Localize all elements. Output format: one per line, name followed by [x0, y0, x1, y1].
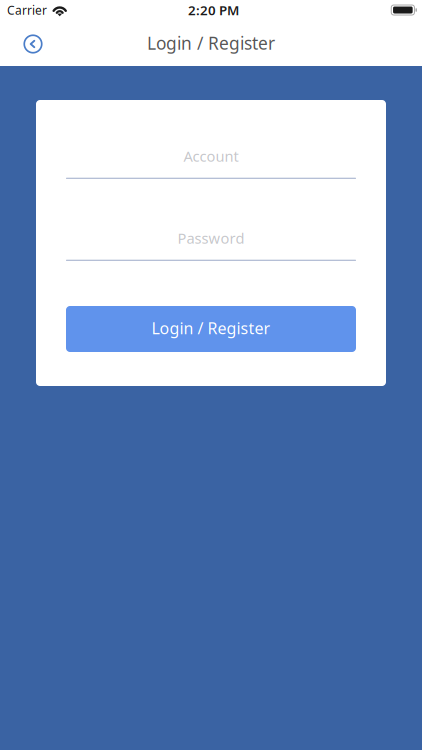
button[interactable]: Login / Register: [66, 306, 356, 352]
button[interactable]: Back: [0, 22, 60, 66]
button[interactable]: Password: [66, 227, 356, 261]
staticText: Account: [183, 146, 238, 166]
staticText: Login / Register: [151, 317, 270, 339]
staticText: Login / Register: [147, 31, 275, 54]
staticText: Carrier: [7, 2, 47, 18]
button[interactable]: Account: [66, 145, 356, 179]
staticText: Password: [177, 228, 244, 248]
staticText: 2:20 PM: [188, 1, 239, 19]
